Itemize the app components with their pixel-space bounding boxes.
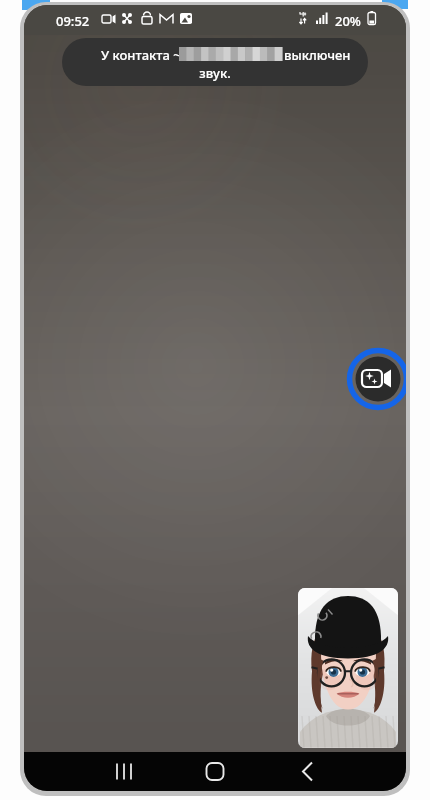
button[interactable]: Your video preview — [298, 588, 398, 748]
button[interactable]: Back — [279, 752, 333, 791]
button[interactable]: Recent apps — [97, 752, 151, 791]
button[interactable]: Video effects — [347, 348, 406, 410]
staticText: 09:52 — [56, 12, 90, 30]
staticText: выключен — [284, 46, 351, 64]
staticText: звук. — [199, 64, 231, 82]
button[interactable]: Home — [188, 752, 242, 791]
staticText: 20% — [335, 12, 361, 30]
button[interactable]: У контакта ~ — [62, 38, 368, 86]
staticText: У контакта ~ — [101, 46, 181, 64]
